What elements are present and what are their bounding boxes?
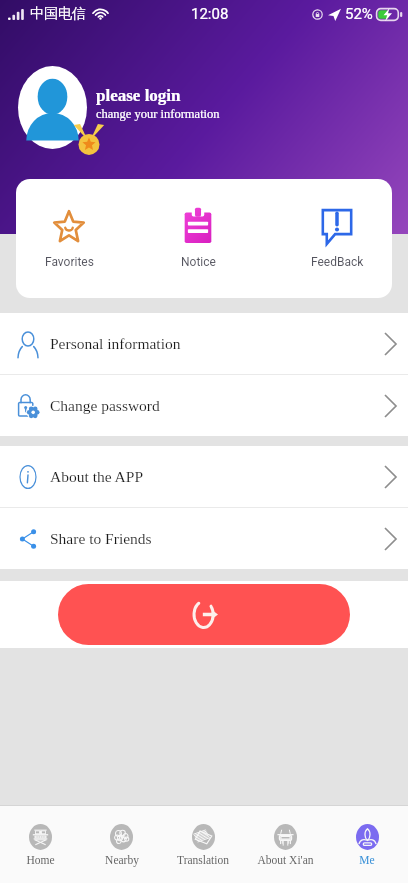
staticText: Personal information [50, 335, 181, 352]
other: Open [385, 528, 396, 550]
staticText: Favorites [45, 255, 94, 269]
staticText: Share to Friends [50, 530, 152, 547]
staticText: Me [359, 854, 375, 867]
staticText: 中国电信 [30, 5, 86, 23]
button[interactable]: Favorites [29, 179, 109, 298]
staticText: Home [26, 854, 55, 867]
button[interactable]: Change password [0, 375, 408, 436]
staticText: 12:08 [191, 5, 229, 23]
staticText: 52% [345, 5, 373, 23]
staticText: FeedBack [311, 255, 364, 269]
button[interactable]: Log out [58, 584, 350, 645]
staticText: please login [96, 86, 181, 105]
staticText: About the APP [50, 468, 144, 485]
staticText: change your information [96, 107, 220, 121]
button[interactable]: Notice [158, 179, 238, 298]
staticText: Notice [181, 255, 216, 269]
staticText: About Xi'an [257, 854, 314, 867]
button[interactable]: Share to Friends [0, 508, 408, 569]
button[interactable]: Home [0, 806, 81, 883]
other: Open [385, 395, 396, 417]
button[interactable]: Me [326, 806, 408, 883]
staticText: Change password [50, 397, 160, 414]
other: Open [385, 466, 396, 488]
button[interactable]: Translation [162, 806, 244, 883]
button[interactable]: About the APP [0, 446, 408, 507]
button[interactable]: Nearby [81, 806, 162, 883]
button[interactable]: Personal information [0, 313, 408, 374]
button[interactable]: About Xi'an [244, 806, 326, 883]
staticText: Nearby [105, 854, 139, 867]
staticText: Translation [177, 854, 229, 867]
button[interactable]: FeedBack [297, 179, 377, 298]
other: Open [385, 333, 396, 355]
